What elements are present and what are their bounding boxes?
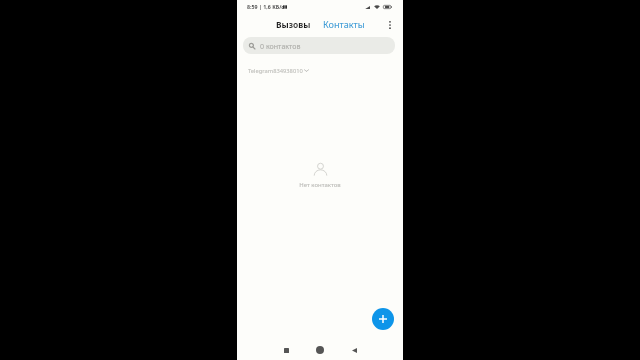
button[interactable]: Recents (276, 340, 296, 360)
staticText: Вызовы (276, 19, 311, 30)
button[interactable]: Вызовы (271, 17, 316, 32)
staticText: Контакты (323, 18, 365, 30)
button[interactable]: Add contact (372, 308, 394, 330)
button[interactable]: Home (310, 340, 330, 360)
button[interactable]: Контакты (321, 16, 366, 31)
staticText: Нет контактов (299, 181, 341, 189)
button[interactable]: Back (344, 340, 364, 360)
button[interactable]: More options (382, 17, 397, 32)
button[interactable]: Telegram834938010 (248, 65, 309, 76)
staticText: 0 контактов (260, 41, 301, 51)
staticText: Telegram834938010 (248, 67, 303, 75)
staticText: 8:59 | 1,6 KБ/с (247, 3, 285, 10)
button[interactable]: 0 контактов (243, 37, 395, 54)
